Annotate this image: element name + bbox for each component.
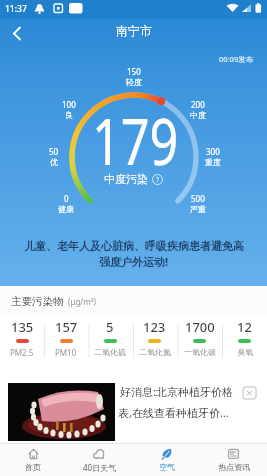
staticText: 首页 <box>25 462 41 472</box>
staticText: 空气 <box>159 462 175 472</box>
staticText: 0 <box>64 193 69 204</box>
staticText: 5 <box>106 318 114 336</box>
staticText: 123 <box>143 318 166 336</box>
staticText: 重度 <box>205 157 221 167</box>
staticText: 热点资讯 <box>218 462 250 472</box>
staticText: 好消息:北京种植牙价格 <box>120 384 233 399</box>
staticText: 179 <box>92 98 179 184</box>
staticText: 1700 <box>185 318 215 336</box>
staticText: (μg/m³) <box>68 296 96 307</box>
staticText: 40日天气 <box>83 462 117 473</box>
staticText: 300 <box>206 146 220 157</box>
staticText: 157 <box>55 318 78 336</box>
staticText: 健康 <box>58 204 74 214</box>
staticText: 臭氧 <box>237 347 253 357</box>
staticText: 135 <box>11 318 34 336</box>
staticText: 表,在线查看种植牙价… <box>118 405 229 420</box>
staticText: 儿童、老年人及心脏病、呼吸疾病患者避免高 <box>24 239 244 253</box>
staticText: 150 <box>127 66 141 77</box>
staticText: 南宁市 <box>116 23 152 38</box>
staticText: 二氧化硫 <box>94 347 126 357</box>
staticText: 优 <box>50 157 58 167</box>
staticText: 00:09发布 <box>219 54 254 64</box>
button[interactable]: 空气 <box>133 444 200 476</box>
staticText: 二氧化氮 <box>139 347 171 357</box>
staticText: 50 <box>49 146 59 157</box>
staticText: 强度户外运动! <box>99 254 169 269</box>
staticText: 中度污染 <box>104 172 148 186</box>
button[interactable]: 好消息:北京种植牙价格 <box>0 376 267 443</box>
staticText: ? <box>156 175 160 185</box>
staticText: 12 <box>237 318 252 336</box>
staticText: 200 <box>191 99 205 110</box>
staticText: 中度 <box>190 110 206 120</box>
staticText: 严重 <box>190 204 206 214</box>
button[interactable] <box>8 383 115 441</box>
staticText: 11:37 <box>5 3 27 15</box>
button[interactable]: 首页 <box>0 444 66 476</box>
staticText: 轻度 <box>126 77 142 87</box>
button[interactable]: 40日天气 <box>66 444 133 476</box>
button[interactable]: ? <box>152 174 163 185</box>
staticText: 良 <box>65 110 73 120</box>
staticText: 500 <box>191 193 205 204</box>
button[interactable] <box>4 23 32 51</box>
staticText: 主要污染物 <box>11 295 64 308</box>
staticText: PM2.5 <box>10 347 34 358</box>
staticText: 一氧化碳 <box>184 347 216 357</box>
staticText: 100 <box>62 99 76 110</box>
button[interactable]: 热点资讯 <box>200 444 267 476</box>
staticText: PM10 <box>55 347 77 358</box>
